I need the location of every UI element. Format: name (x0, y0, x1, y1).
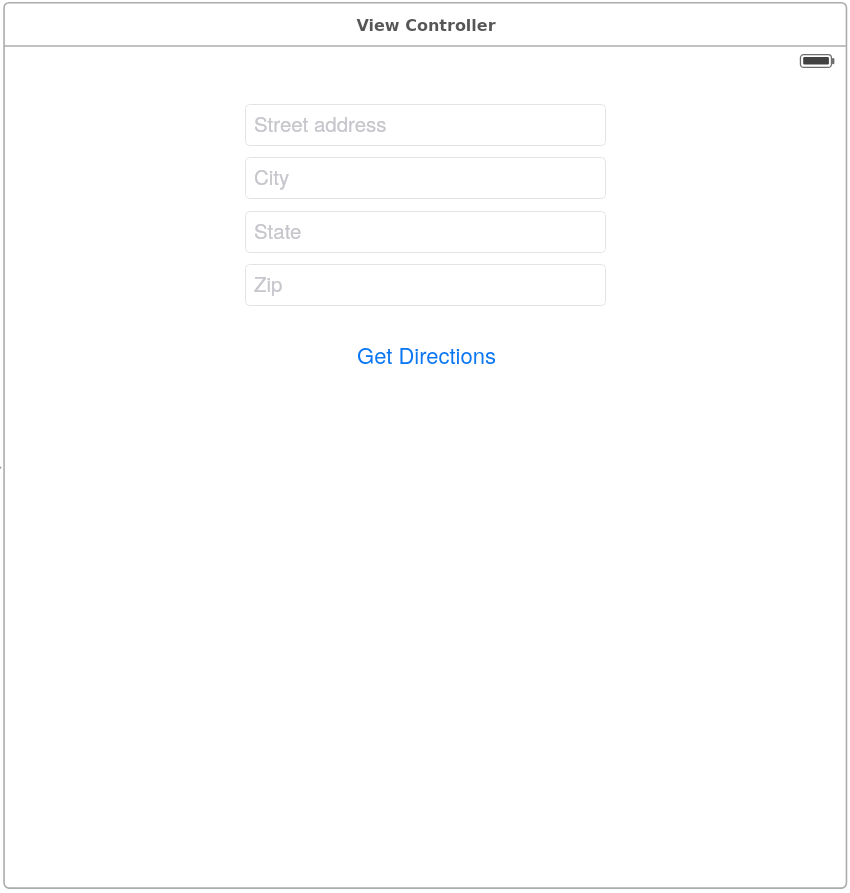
button[interactable]: State (245, 211, 606, 253)
button[interactable]: Battery full (797, 51, 837, 70)
staticText: State (254, 215, 302, 244)
staticText: Street address (254, 108, 387, 137)
staticText: City (254, 161, 290, 190)
button[interactable]: City (245, 157, 606, 199)
staticText: View Controller (356, 16, 496, 35)
button[interactable]: Get Directions (350, 336, 503, 372)
button[interactable]: Street address (245, 104, 606, 146)
button[interactable]: View Controller (0, 0, 850, 46)
staticText: Get Directions (357, 339, 496, 371)
staticText: Zip (254, 268, 283, 297)
button[interactable]: Zip (245, 264, 606, 306)
